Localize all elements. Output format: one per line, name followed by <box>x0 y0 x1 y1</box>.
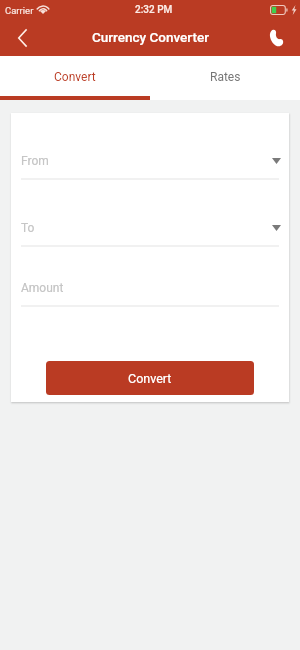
staticText: Convert <box>128 371 172 386</box>
staticText: Currency Converter <box>92 29 209 45</box>
button[interactable]: Back <box>0 20 44 56</box>
staticText: Convert <box>54 70 96 84</box>
button[interactable]: Rates <box>150 56 300 96</box>
staticText: To <box>21 221 35 235</box>
staticText: 2:32 PM <box>135 4 173 16</box>
button[interactable]: From <box>21 154 279 180</box>
staticText: Carrier <box>5 5 34 16</box>
staticText: Rates <box>210 70 241 84</box>
button[interactable]: To <box>21 221 279 247</box>
staticText: From <box>21 154 49 168</box>
staticText: Amount <box>21 281 64 295</box>
button[interactable]: Amount <box>21 281 279 307</box>
button[interactable]: Convert <box>0 56 150 96</box>
button[interactable]: Convert <box>46 361 254 395</box>
button[interactable]: Call <box>253 20 300 56</box>
